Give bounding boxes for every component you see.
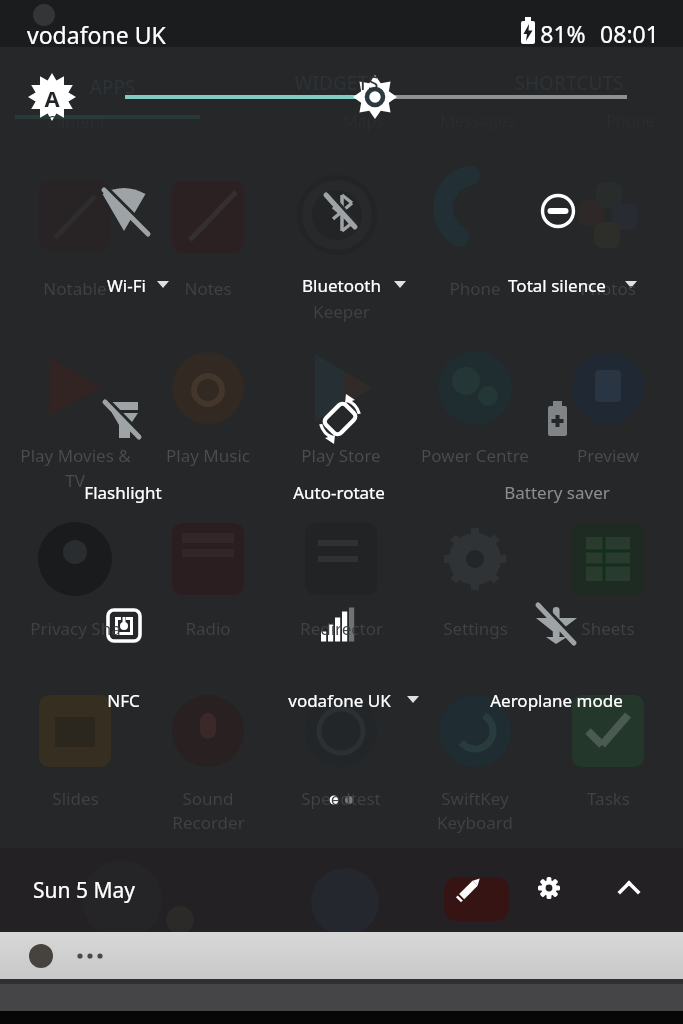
staticText: Notes xyxy=(184,277,232,300)
staticText: APPS xyxy=(89,74,136,100)
staticText: Play Store xyxy=(301,444,381,467)
staticText: Keeper xyxy=(313,300,370,323)
staticText: Photos xyxy=(580,277,636,300)
button[interactable] xyxy=(521,864,577,912)
button[interactable] xyxy=(1,347,228,554)
staticText: Total silence xyxy=(508,274,606,297)
staticText: Auto-rotate xyxy=(293,481,385,504)
button[interactable] xyxy=(1,140,228,347)
staticText: Sun 5 May xyxy=(33,876,135,905)
staticText: Wi-Fi xyxy=(107,274,146,297)
staticText: Camera xyxy=(46,111,105,133)
staticText: Flashlight xyxy=(84,481,162,504)
button[interactable] xyxy=(1,554,228,761)
staticText: 81% xyxy=(540,18,586,49)
button[interactable] xyxy=(72,938,108,974)
staticText: Power Centre xyxy=(421,444,529,467)
staticText: Slides xyxy=(52,787,99,810)
staticText: SHORTCUTS xyxy=(514,70,624,96)
staticText: Bluetooth xyxy=(302,274,381,297)
staticText: Play Music xyxy=(166,444,250,467)
staticText: vodafone UK xyxy=(288,689,391,712)
staticText: Notable xyxy=(43,277,107,300)
staticText: Redirector xyxy=(300,617,383,640)
button[interactable] xyxy=(110,72,640,122)
button[interactable] xyxy=(601,864,657,912)
staticText: Sound xyxy=(182,787,234,810)
button[interactable] xyxy=(228,554,455,761)
staticText: vodafone UK xyxy=(27,19,166,50)
button[interactable] xyxy=(24,69,80,125)
button[interactable] xyxy=(446,864,502,912)
staticText: Maps xyxy=(343,110,384,132)
staticText: Privacy Sha xyxy=(30,617,121,640)
button[interactable] xyxy=(455,140,682,347)
staticText: Preview xyxy=(577,444,639,467)
staticText: Play Movies & xyxy=(20,444,131,467)
staticText: Sheets xyxy=(581,617,635,640)
button[interactable] xyxy=(455,347,682,554)
staticText: Recorder xyxy=(172,811,245,834)
staticText: Speedtest xyxy=(301,787,381,810)
staticText: SwiftKey xyxy=(441,787,509,810)
staticText: A xyxy=(44,83,60,113)
staticText: Radio xyxy=(185,617,231,640)
staticText: Tasks xyxy=(587,787,630,810)
staticText: WIDGETS xyxy=(294,70,379,96)
staticText: Keyboard xyxy=(437,811,513,834)
staticText: TV xyxy=(65,469,85,492)
button[interactable] xyxy=(455,554,682,761)
button[interactable] xyxy=(228,140,455,347)
button[interactable] xyxy=(24,938,60,974)
staticText: Settings xyxy=(443,617,508,640)
staticText: 08:01 xyxy=(600,18,659,49)
staticText: NFC xyxy=(107,689,140,712)
staticText: Battery saver xyxy=(504,481,610,504)
staticText: Aeroplane mode xyxy=(490,689,623,712)
staticText: Phone xyxy=(449,277,501,300)
button[interactable] xyxy=(228,347,455,554)
